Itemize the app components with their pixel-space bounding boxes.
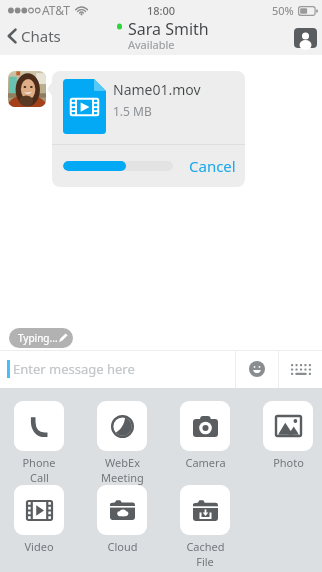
staticText: Phone xyxy=(22,455,56,470)
staticText: Name01.mov xyxy=(113,80,201,99)
staticText: Camera xyxy=(185,455,226,470)
staticText: Enter message here xyxy=(13,360,135,378)
button[interactable]: Video xyxy=(14,485,64,554)
staticText: File xyxy=(196,554,214,569)
button[interactable]: Name01.mov xyxy=(52,71,245,187)
staticText: 50% xyxy=(272,3,294,18)
staticText: Chats xyxy=(21,26,61,46)
staticText: Available xyxy=(128,37,175,50)
button[interactable]: Contact card xyxy=(284,22,322,54)
button[interactable]: Enter message here xyxy=(7,350,235,388)
staticText: Sara Smith xyxy=(128,18,209,40)
staticText: Cached xyxy=(186,539,225,554)
button[interactable]: Cached xyxy=(180,485,230,569)
staticText: 18:00 xyxy=(147,3,176,18)
button[interactable]: Phone xyxy=(14,401,64,485)
button[interactable]: Typing... xyxy=(9,328,73,348)
button[interactable]: Camera xyxy=(180,401,230,470)
staticText: Cloud xyxy=(107,539,138,554)
button[interactable]: Cloud xyxy=(97,485,147,554)
button[interactable]: Keyboard xyxy=(279,350,322,388)
button[interactable]: Cancel xyxy=(189,156,236,176)
staticText: Photo xyxy=(273,455,304,470)
staticText: Typing... xyxy=(18,331,58,345)
staticText: 1.5 MB xyxy=(113,103,152,119)
button[interactable]: Photo xyxy=(263,401,313,470)
staticText: Video xyxy=(24,539,54,554)
staticText: AT&T xyxy=(42,2,70,18)
staticText: WebEx xyxy=(105,455,140,470)
button[interactable]: Chats xyxy=(0,21,71,51)
button[interactable]: WebEx xyxy=(97,401,147,485)
staticText: Meeting xyxy=(101,470,144,485)
button[interactable]: Emoji xyxy=(236,350,278,388)
staticText: Call xyxy=(30,470,49,485)
